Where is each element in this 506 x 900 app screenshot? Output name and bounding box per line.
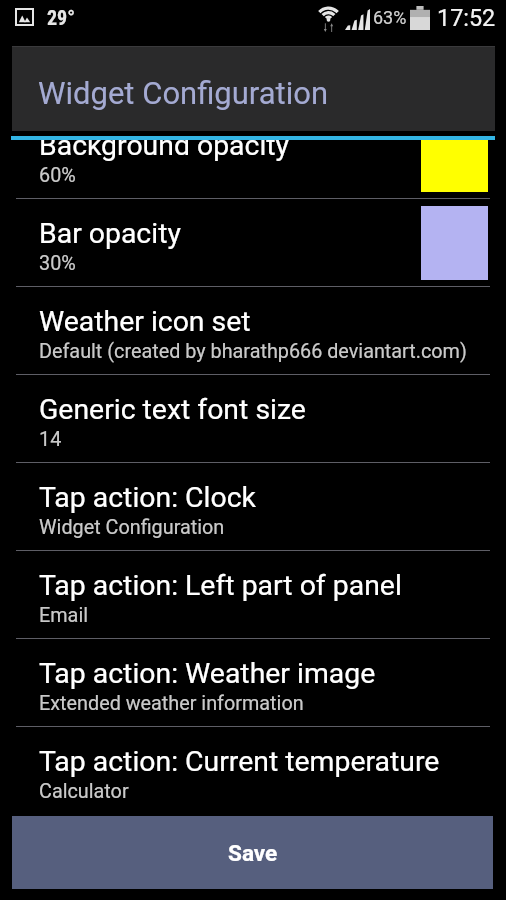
button[interactable]: Save: [12, 816, 493, 889]
staticText: Generic text font size: [39, 393, 306, 426]
staticText: Tap action: Left part of panel: [39, 569, 402, 602]
button[interactable]: Tap action: Clock: [0, 463, 506, 550]
staticText: Save: [228, 840, 278, 866]
staticText: Widget Configuration: [38, 75, 329, 111]
button[interactable]: Background opacity: [0, 140, 506, 198]
staticText: 63%: [373, 7, 407, 28]
staticText: Widget Configuration: [39, 516, 225, 539]
staticText: Default (created by bharathp666 devianta…: [39, 340, 467, 363]
staticText: Email: [39, 604, 89, 627]
button[interactable]: Weather icon set: [0, 287, 506, 374]
staticText: Tap action: Clock: [39, 481, 256, 514]
staticText: 14: [39, 428, 62, 451]
button[interactable]: Generic text font size: [0, 375, 506, 462]
staticText: Weather icon set: [39, 305, 251, 338]
button[interactable]: Tap action: Left part of panel: [0, 551, 506, 638]
staticText: 60%: [39, 164, 76, 187]
button[interactable]: Bar opacity: [0, 199, 506, 286]
staticText: Background opacity: [39, 140, 290, 162]
staticText: Tap action: Current temperature: [39, 745, 440, 778]
staticText: 17:52: [437, 4, 496, 31]
staticText: Calculator: [39, 780, 129, 803]
staticText: Tap action: Weather image: [39, 657, 376, 690]
staticText: 29°: [47, 6, 76, 29]
staticText: 30%: [39, 252, 76, 275]
staticText: Bar opacity: [39, 217, 181, 250]
button[interactable]: Tap action: Weather image: [0, 639, 506, 726]
button[interactable]: Tap action: Current temperature: [0, 727, 506, 814]
staticText: Extended weather information: [39, 692, 304, 715]
